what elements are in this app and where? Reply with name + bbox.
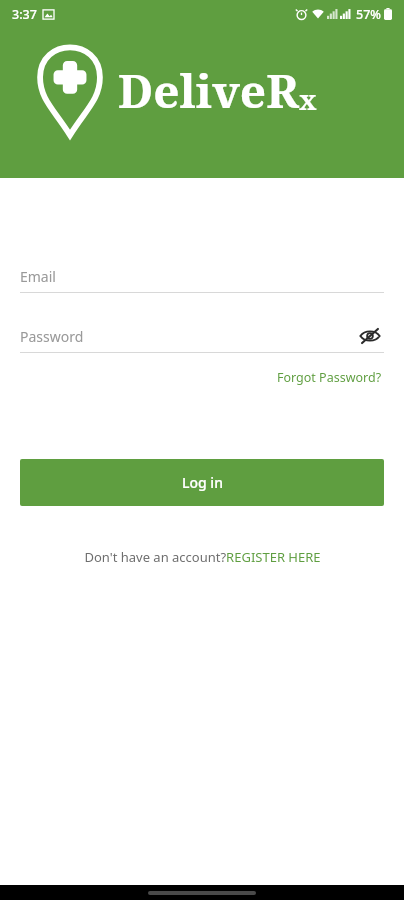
- button[interactable]: Log in: [20, 459, 384, 506]
- button[interactable]: Email: [20, 260, 384, 293]
- staticText: Log in: [182, 473, 223, 492]
- button[interactable]: Show password: [356, 322, 384, 350]
- button[interactable]: Forgot Password?: [275, 366, 384, 389]
- button[interactable]: Don't have an account?REGISTER HERE: [78, 544, 327, 570]
- button[interactable]: Password: [20, 320, 384, 353]
- staticText: Don't have an account?REGISTER HERE: [84, 548, 321, 566]
- staticText: 3:37: [12, 6, 37, 23]
- staticText: Forgot Password?: [277, 369, 382, 386]
- staticText: Email: [20, 267, 56, 286]
- staticText: 57%: [356, 6, 381, 23]
- staticText: x: [299, 81, 317, 118]
- staticText: Password: [20, 327, 84, 346]
- staticText: DeliveR: [118, 59, 299, 122]
